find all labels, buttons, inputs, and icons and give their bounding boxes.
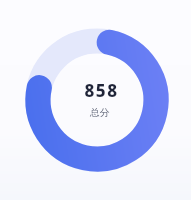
staticText: 总分 [28,107,168,119]
button[interactable]: 总分 858 [25,28,168,171]
staticText: 858 [30,79,168,102]
